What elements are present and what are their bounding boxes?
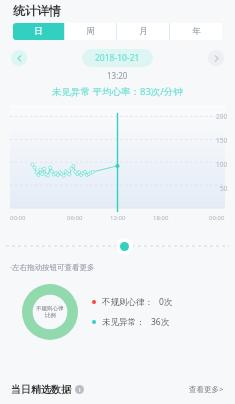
staticText: 36次 xyxy=(151,316,170,328)
button[interactable]: Next day xyxy=(208,50,224,66)
staticText: 150 xyxy=(216,136,228,145)
staticText: 200 xyxy=(216,112,228,121)
staticText: i xyxy=(79,386,81,394)
button[interactable]: Drag to scroll chart xyxy=(116,238,133,255)
button[interactable]: Previous day xyxy=(11,50,27,66)
button[interactable]: 2018-10-21 xyxy=(82,49,153,67)
staticText: 年 xyxy=(192,26,201,37)
staticText: 00:00 xyxy=(209,214,225,222)
staticText: 12:00 xyxy=(110,214,126,222)
staticText: 18:00 xyxy=(153,214,169,222)
staticText: 周 xyxy=(86,26,95,37)
staticText: 统计详情 xyxy=(13,3,61,18)
staticText: 查看更多> xyxy=(189,384,224,394)
staticText: 比例 xyxy=(45,312,56,319)
staticText: 不规则心律 xyxy=(36,305,64,312)
staticText: 0次 xyxy=(159,296,173,308)
staticText: 不规则心律： xyxy=(102,297,153,308)
staticText: 13:20 xyxy=(107,70,128,81)
staticText: 06:00 xyxy=(67,214,83,222)
staticText: 当日精选数据 xyxy=(11,383,71,396)
button[interactable]: 年 xyxy=(170,23,222,40)
staticText: 日 xyxy=(34,26,43,37)
button[interactable]: Info xyxy=(75,385,84,394)
staticText: 00:00 xyxy=(10,214,26,222)
staticText: 2018-10-21 xyxy=(95,52,140,64)
button[interactable]: 查看更多> xyxy=(189,384,224,394)
staticText: 未见异常： xyxy=(102,317,145,328)
button[interactable]: 日 xyxy=(13,23,64,40)
staticText: 月 xyxy=(139,26,148,37)
staticText: 100 xyxy=(216,160,228,169)
staticText: 50 xyxy=(220,184,228,193)
staticText: ·左右拖动按钮可查看更多 xyxy=(10,262,95,272)
staticText: 未见异常 平均心率：83次/分钟 xyxy=(52,85,183,98)
button[interactable]: 周 xyxy=(65,23,116,40)
button[interactable]: 月 xyxy=(117,23,169,40)
